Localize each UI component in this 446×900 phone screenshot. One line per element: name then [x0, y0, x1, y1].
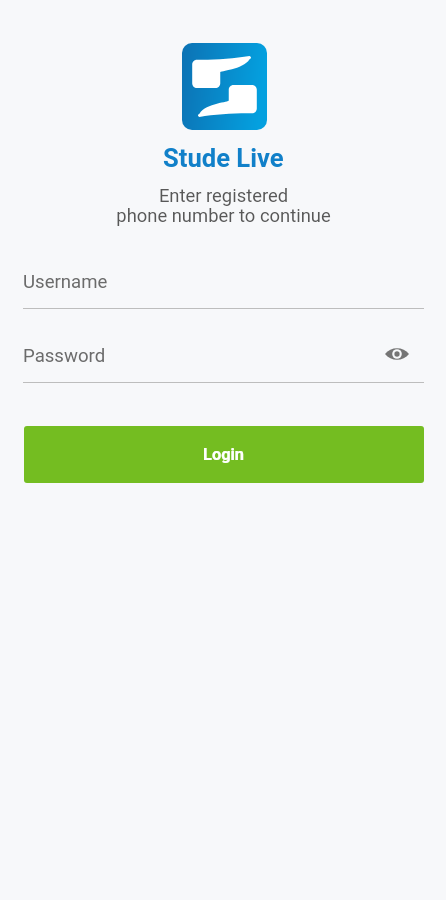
staticText: Username [23, 271, 424, 293]
button[interactable]: Username [23, 256, 424, 309]
staticText: Login [203, 445, 245, 464]
button[interactable]: Password [23, 330, 424, 383]
staticText: Stude Live [163, 143, 284, 173]
button[interactable]: Show password [380, 337, 414, 371]
staticText: Password [23, 345, 390, 367]
staticText: Enter registered phone number to continu… [116, 185, 331, 227]
button[interactable]: Login [24, 426, 424, 483]
